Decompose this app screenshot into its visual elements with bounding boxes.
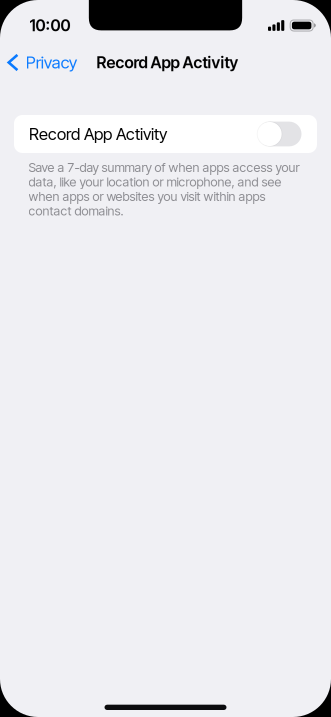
staticText: Save a 7-day summary of when apps access… [28,160,299,218]
button[interactable]: Back to Privacy [0,46,86,79]
button[interactable]: Record App Activity [0,115,331,153]
staticText: Privacy [26,52,78,73]
button[interactable]: Record App Activity, off [258,122,301,146]
staticText: Record App Activity [29,124,167,144]
staticText: 10:00 [29,16,70,35]
staticText: Record App Activity [96,53,238,72]
